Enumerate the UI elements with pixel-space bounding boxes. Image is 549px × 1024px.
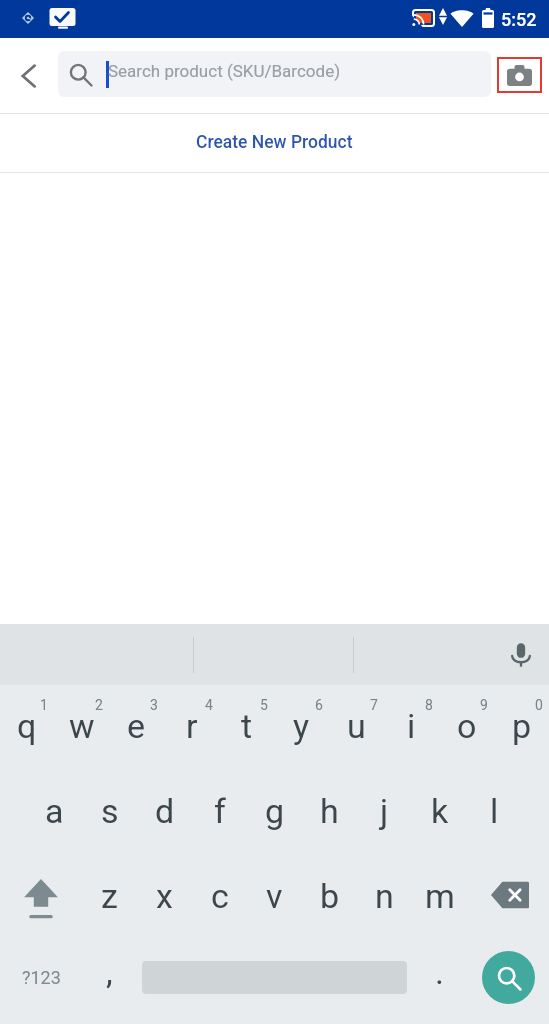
staticText: n (375, 876, 394, 916)
button[interactable]: m (412, 854, 467, 939)
staticText: 9 (480, 697, 488, 713)
staticText: q (17, 706, 37, 746)
staticText: 3 (150, 697, 158, 713)
button[interactable]: s (82, 769, 137, 854)
staticText: p (512, 706, 532, 746)
button[interactable]: . (412, 935, 467, 1020)
button[interactable]: z (82, 854, 137, 939)
button[interactable]: j (357, 769, 412, 854)
staticText: e (127, 706, 146, 746)
button[interactable]: Create New Product (0, 114, 549, 172)
staticText: y (293, 706, 310, 746)
button[interactable]: t (219, 685, 274, 769)
button[interactable]: u (329, 685, 384, 769)
button[interactable]: Navigate back (7, 54, 51, 98)
button[interactable]: , (82, 935, 137, 1020)
button[interactable]: r (164, 685, 219, 769)
button[interactable]: Backspace (467, 854, 549, 939)
staticText: w (69, 706, 95, 746)
staticText: , (106, 952, 113, 992)
staticText: i (407, 706, 416, 746)
button[interactable]: ?123 (0, 935, 82, 1020)
button[interactable]: w (54, 685, 109, 769)
staticText: l (490, 791, 499, 831)
staticText: b (320, 876, 340, 916)
staticText: . (435, 952, 444, 992)
staticText: o (457, 706, 477, 746)
button[interactable]: v (247, 854, 302, 939)
button[interactable]: Search (467, 935, 549, 1020)
staticText: a (45, 791, 64, 831)
button[interactable] (137, 935, 412, 1020)
staticText: ?123 (22, 967, 61, 988)
button[interactable]: l (467, 769, 522, 854)
staticText: s (101, 791, 119, 831)
staticText: x (156, 876, 173, 916)
button[interactable]: g (247, 769, 302, 854)
staticText: c (211, 876, 229, 916)
button[interactable]: Search product (SKU/Barcode) (58, 51, 491, 97)
staticText: d (155, 791, 175, 831)
staticText: 7 (370, 697, 378, 713)
staticText: 5:52 (501, 9, 537, 30)
staticText: v (266, 876, 283, 916)
staticText: j (380, 791, 389, 831)
staticText: g (265, 791, 285, 831)
button[interactable]: Shift (0, 854, 82, 939)
button[interactable]: e (109, 685, 164, 769)
button[interactable]: p (494, 685, 549, 769)
staticText: f (214, 791, 226, 831)
staticText: 2 (95, 697, 103, 713)
button[interactable]: q (0, 685, 54, 769)
staticText: r (186, 706, 198, 746)
staticText: 6 (315, 697, 323, 713)
staticText: k (431, 791, 449, 831)
staticText: 8 (425, 697, 433, 713)
staticText: m (425, 876, 455, 916)
staticText: 4 (205, 697, 213, 713)
button[interactable]: n (357, 854, 412, 939)
button[interactable]: c (192, 854, 247, 939)
button[interactable]: b (302, 854, 357, 939)
staticText: u (347, 706, 366, 746)
button[interactable]: o (439, 685, 494, 769)
button[interactable]: f (192, 769, 247, 854)
button[interactable]: k (412, 769, 467, 854)
staticText: 1 (40, 697, 48, 713)
staticText: Create New Product (196, 132, 353, 153)
button[interactable]: y (274, 685, 329, 769)
button[interactable]: h (302, 769, 357, 854)
staticText: z (101, 876, 118, 916)
button[interactable]: a (27, 769, 82, 854)
staticText: t (241, 706, 253, 746)
button[interactable]: Voice input (499, 633, 543, 677)
button[interactable]: i (384, 685, 439, 769)
button[interactable]: Scan barcode with camera (497, 57, 542, 93)
staticText: h (320, 791, 339, 831)
staticText: 5 (260, 697, 268, 713)
button[interactable]: d (137, 769, 192, 854)
staticText: Search product (SKU/Barcode) (108, 61, 341, 81)
staticText: 0 (535, 697, 543, 713)
button[interactable]: x (137, 854, 192, 939)
